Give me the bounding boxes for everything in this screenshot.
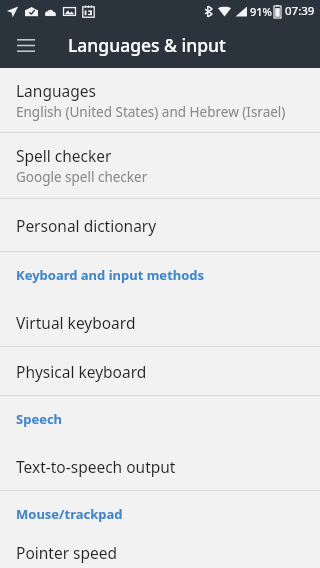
staticText: 91% [250,4,272,19]
staticText: Pointer speed [16,542,118,563]
button[interactable]: Virtual keyboard [0,298,320,346]
button[interactable]: Languages [0,68,320,132]
staticText: Languages [16,80,96,101]
staticText: Spell checker [16,145,112,166]
staticText: 07:39 [285,3,315,19]
staticText: English (United States) and Hebrew (Isra… [16,103,286,121]
staticText: Speech [16,410,63,428]
staticText: Personal dictionary [16,215,157,236]
staticText: Google spell checker [16,168,148,186]
button[interactable]: Spell checker [0,133,320,198]
button[interactable]: Physical keyboard [0,347,320,395]
staticText: Physical keyboard [16,361,147,382]
staticText: Text-to-speech output [16,456,176,477]
button[interactable]: Personal dictionary [0,199,320,251]
staticText: Mouse/trackpad [16,505,123,523]
staticText: Virtual keyboard [16,312,136,333]
staticText: Languages & input [68,33,226,57]
button[interactable]: Open navigation drawer [10,29,42,61]
staticText: Keyboard and input methods [16,266,205,284]
button[interactable]: Pointer speed [0,537,320,568]
button[interactable]: Text-to-speech output [0,442,320,490]
